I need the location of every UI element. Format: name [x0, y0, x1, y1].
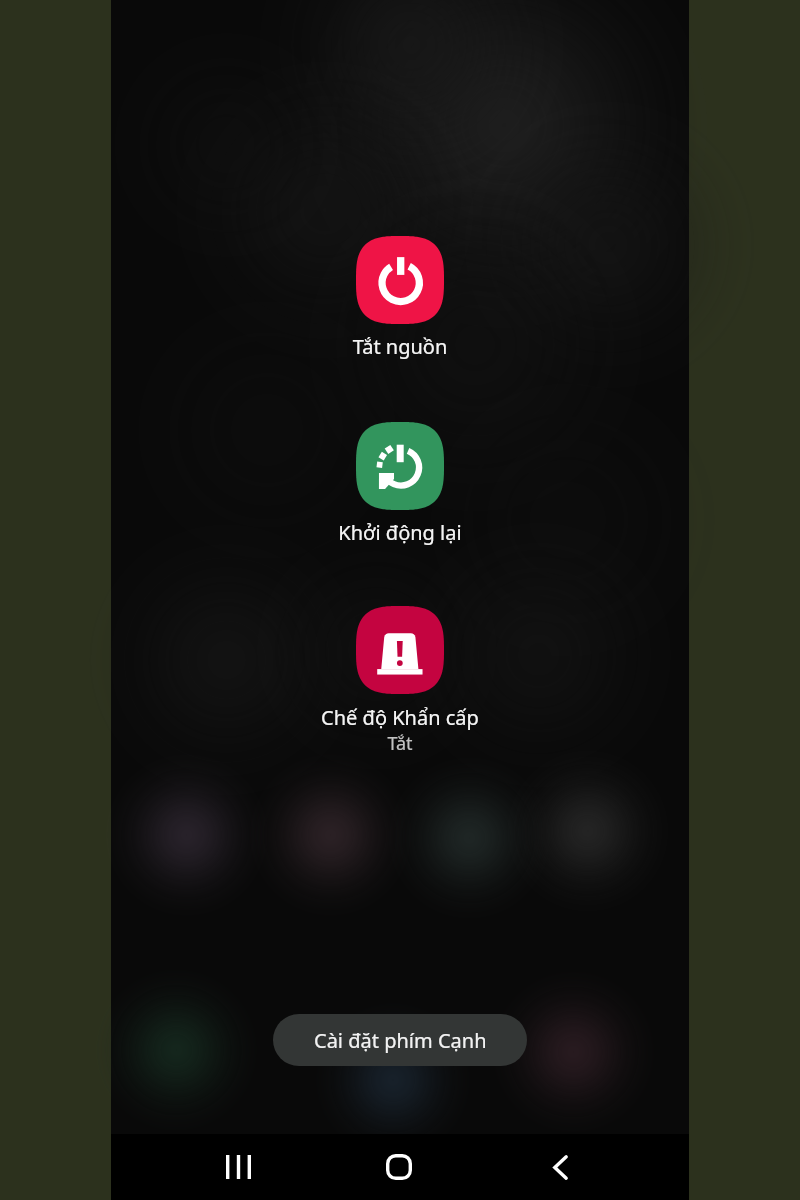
button[interactable]: Home — [349, 1134, 449, 1200]
staticText: Tắt nguồn — [280, 333, 520, 360]
staticText: Khởi động lại — [280, 519, 520, 546]
button[interactable]: Cài đặt phím Cạnh — [273, 1014, 527, 1066]
button[interactable]: Khởi động lại — [280, 422, 520, 546]
button[interactable]: Recent apps — [188, 1134, 288, 1200]
button[interactable]: Back — [510, 1134, 610, 1200]
staticText: Cài đặt phím Cạnh — [314, 1027, 487, 1054]
staticText: Chế độ Khẩn cấp — [280, 704, 520, 731]
button[interactable]: Tắt nguồn — [280, 236, 520, 360]
button[interactable]: Chế độ Khẩn cấp — [280, 606, 520, 756]
staticText: Tắt — [280, 731, 520, 756]
